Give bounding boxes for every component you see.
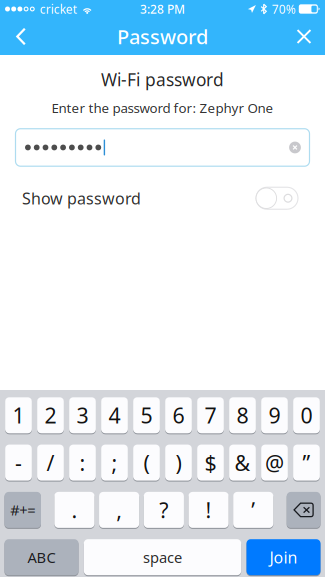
button[interactable]: ’ bbox=[233, 491, 273, 528]
staticText: & bbox=[234, 448, 250, 477]
button[interactable]: Back bbox=[0, 18, 42, 55]
staticText: 6 bbox=[172, 401, 184, 429]
staticText: 5 bbox=[140, 401, 152, 429]
staticText: 3:28 PM bbox=[140, 1, 185, 17]
button[interactable]: Delete bbox=[287, 491, 320, 528]
button[interactable]: 5 bbox=[133, 397, 160, 434]
button[interactable]: $ bbox=[197, 444, 224, 481]
staticText: ) bbox=[175, 448, 181, 477]
button[interactable]: Join bbox=[246, 539, 320, 576]
button[interactable]: Close bbox=[283, 18, 325, 55]
button[interactable]: Show password bbox=[0, 180, 325, 216]
button[interactable]: #+= bbox=[4, 491, 41, 528]
button[interactable]: 0 bbox=[293, 397, 320, 434]
staticText: Wi-Fi password bbox=[101, 68, 224, 91]
button[interactable]: & bbox=[229, 444, 256, 481]
staticText: $ bbox=[204, 448, 216, 477]
staticText: 7 bbox=[204, 401, 216, 429]
button[interactable]: ( bbox=[133, 444, 160, 481]
staticText: space bbox=[143, 547, 182, 567]
staticText: 2 bbox=[44, 401, 56, 429]
button[interactable]: 7 bbox=[197, 397, 224, 434]
button[interactable]: 8 bbox=[229, 397, 256, 434]
staticText: Enter the password for: Zephyr One bbox=[51, 99, 273, 117]
button[interactable]: ! bbox=[188, 491, 229, 528]
button[interactable]: / bbox=[37, 444, 64, 481]
staticText: Show password bbox=[22, 188, 141, 209]
staticText: / bbox=[46, 448, 54, 477]
staticText: - bbox=[15, 448, 22, 477]
button[interactable]: , bbox=[99, 491, 139, 528]
staticText: : bbox=[79, 448, 85, 477]
staticText: ? bbox=[159, 496, 168, 524]
staticText: ’ bbox=[251, 496, 255, 524]
button[interactable]: 6 bbox=[165, 397, 192, 434]
staticText: Join bbox=[269, 547, 297, 568]
staticText: ( bbox=[143, 448, 149, 477]
button[interactable]: @ bbox=[261, 444, 288, 481]
button[interactable]: . bbox=[54, 491, 94, 528]
button[interactable]: 1 bbox=[5, 397, 32, 434]
staticText: 70% bbox=[272, 1, 296, 17]
staticText: 0 bbox=[300, 401, 312, 429]
staticText: Password bbox=[117, 23, 208, 50]
staticText: ! bbox=[205, 496, 211, 524]
staticText: 1 bbox=[12, 401, 24, 429]
staticText: cricket bbox=[40, 1, 77, 17]
staticText: @ bbox=[265, 448, 284, 477]
staticText: , bbox=[116, 496, 122, 524]
button[interactable]: 2 bbox=[37, 397, 64, 434]
button[interactable]: ” bbox=[293, 444, 320, 481]
staticText: ; bbox=[111, 448, 117, 477]
button[interactable]: - bbox=[5, 444, 32, 481]
button[interactable]: space bbox=[84, 539, 241, 576]
button[interactable]: ; bbox=[101, 444, 128, 481]
staticText: 4 bbox=[108, 401, 120, 429]
button[interactable]: 9 bbox=[261, 397, 288, 434]
button[interactable]: 3 bbox=[69, 397, 96, 434]
button[interactable]: 4 bbox=[101, 397, 128, 434]
button[interactable]: ABC bbox=[4, 539, 78, 576]
staticText: 9 bbox=[268, 401, 280, 429]
staticText: #+= bbox=[10, 500, 35, 520]
staticText: 3 bbox=[76, 401, 88, 429]
button[interactable]: ? bbox=[144, 491, 184, 528]
staticText: ABC bbox=[27, 547, 55, 567]
staticText: ” bbox=[302, 448, 310, 477]
staticText: . bbox=[71, 496, 77, 524]
button[interactable]: : bbox=[69, 444, 96, 481]
button[interactable]: ) bbox=[165, 444, 192, 481]
staticText: 8 bbox=[236, 401, 248, 429]
